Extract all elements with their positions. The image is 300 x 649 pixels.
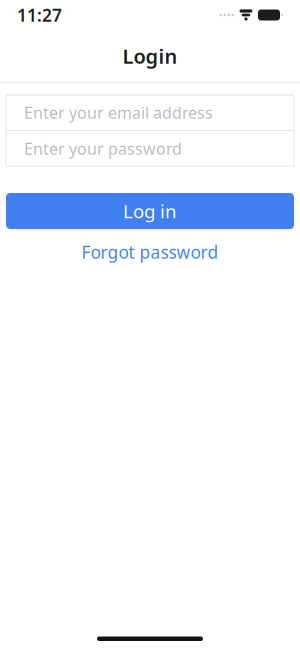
staticText: Forgot password — [81, 240, 218, 263]
staticText: Enter your email address — [24, 102, 213, 123]
button[interactable]: Log in — [6, 193, 294, 229]
staticText: Login — [122, 43, 177, 69]
staticText: Enter your password — [24, 138, 182, 159]
staticText: Log in — [123, 199, 177, 223]
staticText: 11:27 — [17, 3, 62, 26]
button[interactable]: Forgot password — [0, 241, 300, 263]
